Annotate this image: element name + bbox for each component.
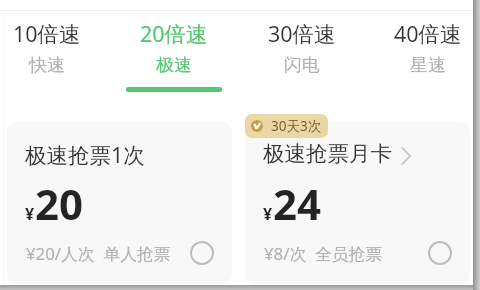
staticText: ¥ bbox=[25, 203, 35, 225]
staticText: 极速 bbox=[156, 54, 192, 77]
staticText: 10倍速 bbox=[13, 19, 81, 48]
staticText: 星速 bbox=[410, 54, 446, 77]
button[interactable]: 30天3次 bbox=[245, 114, 328, 138]
button[interactable]: 20倍速 bbox=[118, 11, 230, 93]
staticText: 30倍速 bbox=[268, 19, 336, 48]
staticText: 24 bbox=[273, 175, 322, 232]
button[interactable]: 极速抢票1次 bbox=[7, 122, 232, 284]
staticText: 40倍速 bbox=[394, 19, 462, 48]
staticText: 30天3次 bbox=[271, 117, 322, 135]
button[interactable]: 10倍速 bbox=[0, 11, 103, 93]
staticText: ¥20/人次 单人抢票 bbox=[26, 242, 171, 265]
staticText: 快速 bbox=[29, 54, 65, 77]
staticText: ¥ bbox=[263, 203, 273, 225]
staticText: 极速抢票1次 bbox=[25, 140, 145, 169]
button[interactable]: Select plan bbox=[427, 240, 453, 266]
button[interactable]: Select plan bbox=[189, 240, 215, 266]
button[interactable]: 极速抢票月卡 bbox=[245, 122, 470, 284]
button[interactable]: 40倍速 bbox=[372, 11, 480, 93]
staticText: 极速抢票月卡 bbox=[263, 140, 392, 167]
staticText: 闪电 bbox=[284, 54, 320, 77]
staticText: ¥8/次 全员抢票 bbox=[264, 242, 383, 265]
staticText: 20倍速 bbox=[140, 19, 208, 48]
button[interactable]: 30倍速 bbox=[246, 11, 358, 93]
staticText: 20 bbox=[35, 175, 84, 232]
